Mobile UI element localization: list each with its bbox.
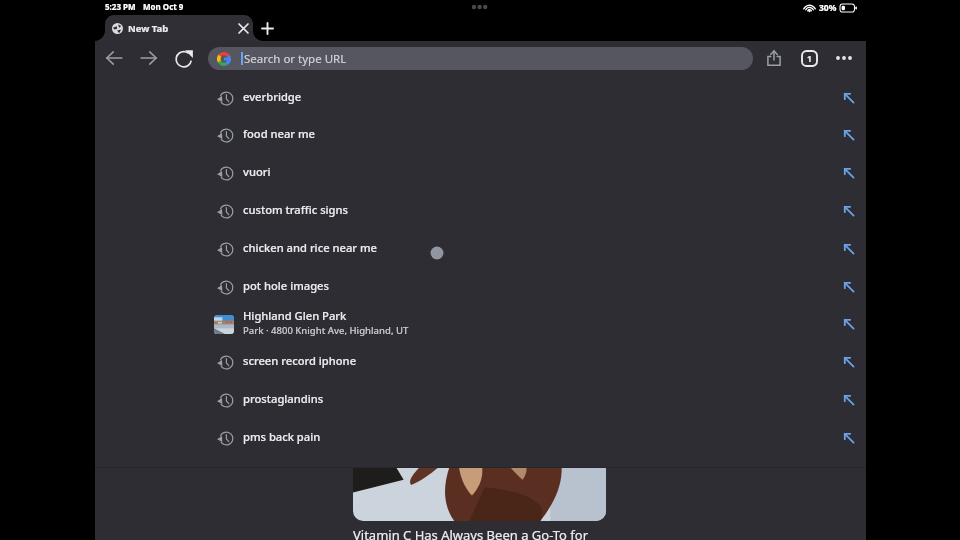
button[interactable]: Use this suggestion — [835, 154, 863, 192]
button[interactable]: Use this suggestion — [835, 419, 863, 457]
staticText: 1 — [807, 53, 812, 65]
button[interactable]: Highland Glen Park — [95, 303, 866, 341]
staticText: Highland Glen Park — [243, 308, 347, 323]
button[interactable]: Use this suggestion — [835, 192, 863, 230]
button[interactable]: Search or type URL — [208, 47, 753, 70]
button[interactable]: Share — [760, 44, 788, 72]
staticText: screen record iphone — [243, 353, 357, 368]
staticText: pms back pain — [243, 429, 321, 444]
button[interactable]: screen record iphone — [95, 341, 866, 379]
staticText: 5:23 PM — [105, 1, 136, 12]
button[interactable]: More options — [830, 44, 858, 72]
button[interactable]: Open tabs — [795, 44, 823, 72]
button[interactable]: prostaglandins — [95, 379, 866, 417]
button[interactable] — [353, 446, 606, 521]
button[interactable]: pms back pain — [95, 417, 866, 455]
staticText: custom traffic signs — [243, 202, 349, 217]
staticText: Search or type URL — [244, 51, 347, 67]
button[interactable]: Use this suggestion — [835, 116, 863, 154]
staticText: pot hole images — [243, 278, 329, 293]
staticText: Mon Oct 9 — [143, 1, 184, 12]
button[interactable]: everbridge — [95, 77, 866, 115]
staticText: Park · 4800 Knight Ave, Highland, UT — [243, 324, 409, 337]
button[interactable]: Reload — [170, 44, 198, 72]
staticText: 30% — [819, 2, 837, 14]
button[interactable]: vuori — [95, 152, 866, 190]
button[interactable]: Vitamin C Has Always Been a Go-To for — [353, 526, 589, 540]
staticText: prostaglandins — [243, 391, 324, 406]
staticText: vuori — [243, 164, 271, 179]
staticText: New Tab — [128, 22, 169, 35]
button[interactable]: Use this suggestion — [835, 381, 863, 419]
button[interactable]: Close tab — [233, 18, 253, 38]
button[interactable]: New Tab — [105, 15, 253, 41]
staticText: food near me — [243, 126, 316, 141]
button[interactable]: Back — [100, 44, 128, 72]
staticText: everbridge — [243, 89, 302, 104]
button[interactable]: New tab — [255, 15, 279, 41]
button[interactable]: pot hole images — [95, 266, 866, 304]
staticText: chicken and rice near me — [243, 240, 377, 255]
button[interactable]: Use this suggestion — [835, 230, 863, 268]
button[interactable]: Use this suggestion — [835, 79, 863, 117]
button[interactable]: Forward — [135, 44, 163, 72]
button[interactable]: chicken and rice near me — [95, 228, 866, 266]
button[interactable]: food near me — [95, 114, 866, 152]
button[interactable]: Use this suggestion — [835, 268, 863, 306]
button[interactable]: Use this suggestion — [835, 305, 863, 343]
button[interactable]: custom traffic signs — [95, 190, 866, 228]
button[interactable]: Use this suggestion — [835, 343, 863, 381]
